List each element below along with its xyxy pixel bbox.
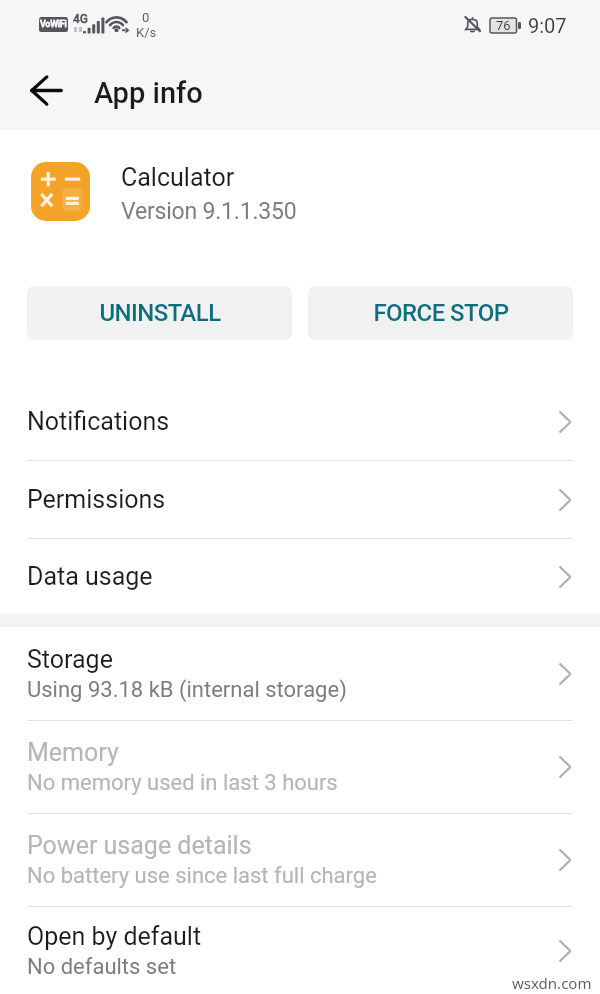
staticText: 0 [142,10,150,25]
button[interactable]: Data usage [0,539,600,614]
staticText: FORCE STOP [373,299,509,327]
staticText: UNINSTALL [99,299,221,327]
button[interactable]: Open by default [0,907,600,994]
button[interactable]: Notifications [0,383,600,460]
button[interactable]: Permissions [0,461,600,538]
staticText: 4G [73,12,88,26]
staticText: wsxdn.com [512,973,592,993]
button[interactable]: UNINSTALL [27,286,292,340]
staticText: VoWiFi [40,19,67,30]
staticText: Calculator [121,163,235,192]
staticText: Version 9.1.1.350 [121,198,297,225]
staticText: Notifications [27,407,170,436]
button[interactable]: Back [18,62,74,118]
staticText: No memory used in last 3 hours [27,770,338,796]
staticText: No battery use since last full charge [27,863,377,889]
button[interactable]: Power usage details [0,814,600,906]
staticText: Storage [27,645,113,674]
button[interactable]: Memory [0,721,600,813]
staticText: Permissions [27,485,166,514]
staticText: Open by default [27,922,202,951]
staticText: No defaults set [27,954,177,980]
staticText: 76 [496,18,511,33]
staticText: Using 93.18 kB (internal storage) [27,677,347,703]
button[interactable]: FORCE STOP [308,286,573,340]
button[interactable]: Storage [0,627,600,720]
staticText: 9:07 [528,14,567,37]
staticText: K/s [136,25,157,40]
staticText: App info [94,76,203,110]
staticText: Data usage [27,562,153,591]
staticText: Power usage details [27,831,252,860]
staticText: Memory [27,738,119,767]
